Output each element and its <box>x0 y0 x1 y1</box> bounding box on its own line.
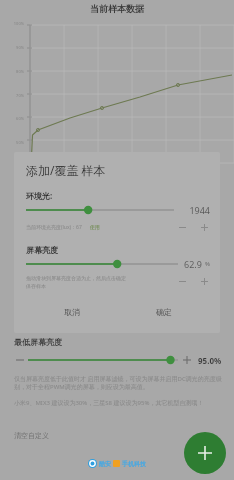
button[interactable]: 增加 <box>180 353 194 367</box>
staticText: 95.0% <box>198 355 222 366</box>
staticText: 保存样本 <box>26 283 46 289</box>
staticText: 清空自定义 <box>14 431 49 440</box>
staticText: 62.9 <box>184 258 202 270</box>
button[interactable]: 减少 <box>14 354 26 366</box>
staticText: 50% <box>0 140 24 145</box>
button[interactable]: 增加环境光 <box>198 221 210 233</box>
button[interactable]: 减少环境光 <box>176 221 188 233</box>
staticText: 当前样本数据 <box>0 3 234 14</box>
staticText: 70% <box>0 93 24 98</box>
staticText: 小米9、MIX3 建议设为30%，三星S8 建议设为95%，其它机型自测哦！ <box>14 399 204 407</box>
staticText: 最低屏幕亮度 <box>14 337 62 347</box>
button[interactable]: 取消 <box>26 303 118 321</box>
staticText: 拖动滑块到屏幕亮度合适为止，然后点击确定 <box>26 275 126 281</box>
staticText: 确定 <box>156 307 172 317</box>
button[interactable]: 使用 <box>88 224 102 230</box>
staticText: 80% <box>0 69 24 74</box>
staticText: 取消 <box>64 307 80 317</box>
button[interactable]: 减少亮度 <box>176 275 188 287</box>
staticText: 100% <box>0 21 24 26</box>
staticText: 屏幕亮度 <box>26 245 58 255</box>
button[interactable]: 确定 <box>118 303 210 321</box>
staticText: (Lux) 自动生成的亮度映射曲线样本 <box>14 283 108 291</box>
staticText: 环境光 67 / 屏幕亮度 62.9% <box>14 273 89 281</box>
staticText: 酷安 <box>99 460 111 468</box>
staticText: 90% <box>0 45 24 50</box>
staticText: 样本 <box>14 258 32 269</box>
staticText: 手机科技 <box>122 460 146 468</box>
staticText: 当前环境光亮度(lux)：67 <box>26 224 82 231</box>
button[interactable]: 清空自定义 <box>14 429 49 442</box>
staticText: 60% <box>0 116 24 121</box>
staticText: 添加/覆盖 样本 <box>26 162 106 178</box>
staticText: 仅当屏幕亮度低于此值时才 启用屏幕滤镜，可设为屏幕并启用DC调光的亮度级别，对于… <box>14 375 222 391</box>
staticText: 40% <box>0 164 24 169</box>
staticText: % <box>205 260 210 268</box>
button[interactable]: 增加亮度 <box>198 275 210 287</box>
staticText: 环境光: <box>26 190 53 201</box>
button[interactable]: 添加样本 <box>184 432 226 474</box>
staticText: 使用 <box>90 224 100 230</box>
staticText: 1944 <box>180 204 210 216</box>
